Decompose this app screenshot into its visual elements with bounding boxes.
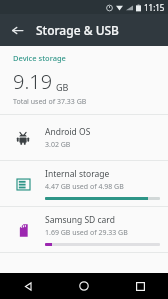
button[interactable]: Android OS [0, 115, 168, 160]
staticText: 11:15 [144, 2, 165, 13]
staticText: Storage & USB [36, 22, 119, 38]
staticText: Total used of 37.33 GB [13, 97, 87, 107]
staticText: Android OS [45, 126, 91, 138]
button[interactable]: Home [56, 273, 112, 299]
button[interactable]: Samsung SD card [0, 207, 168, 252]
staticText: 9.19 [13, 68, 53, 95]
button[interactable]: Navigate up [4, 17, 30, 43]
button[interactable]: Back [0, 273, 56, 299]
button[interactable]: Internal storage [0, 161, 168, 206]
button[interactable]: Recent apps [112, 273, 168, 299]
staticText: 3.02 GB [45, 140, 71, 150]
staticText: Device storage [13, 53, 66, 63]
staticText: 1.69 GB used of 29.33 GB [45, 228, 128, 238]
staticText: Samsung SD card [45, 214, 115, 226]
staticText: 4.47 GB used of 4.98 GB [45, 182, 124, 192]
staticText: Internal storage [45, 168, 110, 180]
staticText: GB [56, 81, 69, 93]
